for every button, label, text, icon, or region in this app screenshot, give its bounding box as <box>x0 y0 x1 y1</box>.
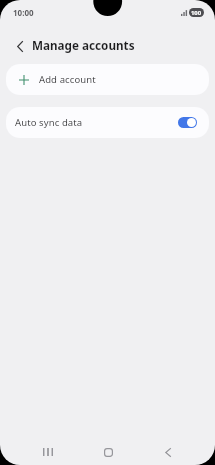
button[interactable]: Back <box>148 439 188 465</box>
button[interactable]: Recent apps <box>28 439 68 465</box>
staticText: Auto sync data <box>15 116 83 129</box>
staticText: Add account <box>39 73 96 86</box>
button[interactable]: Home <box>88 439 128 465</box>
button[interactable]: Auto sync data, on <box>178 117 197 128</box>
button[interactable]: Auto sync data <box>6 107 209 138</box>
staticText: Manage accounts <box>32 37 135 53</box>
staticText: 10:00 <box>13 7 34 18</box>
staticText: 100 <box>191 9 202 17</box>
button[interactable]: Add account <box>6 64 209 95</box>
button[interactable]: Navigate up <box>0 30 40 58</box>
